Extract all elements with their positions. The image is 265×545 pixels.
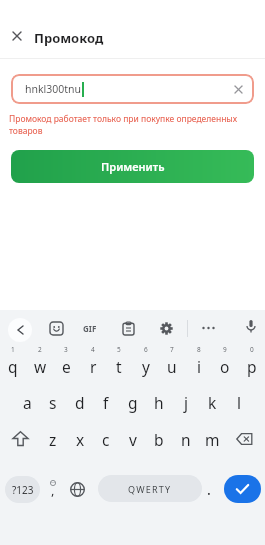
staticText: Применить (101, 159, 165, 174)
button[interactable] (66, 478, 88, 500)
button[interactable]: d (67, 389, 93, 415)
staticText: 6 (144, 345, 148, 354)
staticText: h (154, 392, 164, 413)
staticText: j (184, 392, 188, 413)
staticText: QWERTY (128, 483, 172, 495)
staticText: a (23, 392, 32, 413)
button[interactable]: g (120, 389, 146, 415)
button[interactable] (198, 319, 218, 337)
button[interactable]: , (43, 477, 63, 501)
button[interactable] (8, 318, 32, 342)
staticText: 8 (197, 345, 201, 354)
staticText: l (237, 392, 241, 413)
button[interactable]: l (226, 389, 252, 415)
button[interactable]: QWERTY (98, 475, 202, 502)
staticText: Промокод работает только при покупке опр… (9, 113, 238, 137)
staticText: o (220, 356, 230, 377)
staticText: q (8, 356, 18, 377)
staticText: w (34, 356, 47, 377)
button[interactable]: q (0, 353, 26, 379)
staticText: i (197, 356, 201, 377)
button[interactable] (156, 318, 176, 338)
staticText: b (154, 429, 164, 450)
button[interactable] (118, 318, 138, 338)
staticText: y (142, 356, 150, 377)
button[interactable]: . (201, 477, 217, 501)
staticText: d (75, 392, 85, 413)
staticText: z (49, 429, 57, 450)
staticText: hnkl300tnu (25, 82, 82, 96)
button[interactable]: Применить (11, 150, 254, 183)
staticText: g (128, 392, 138, 413)
button[interactable]: u (159, 353, 185, 379)
button[interactable] (241, 317, 261, 337)
staticText: 3 (64, 345, 68, 354)
staticText: k (208, 392, 217, 413)
staticText: Промокод (34, 29, 104, 47)
button[interactable]: a (14, 389, 40, 415)
button[interactable] (8, 427, 32, 451)
staticText: n (181, 429, 191, 450)
staticText: p (247, 356, 257, 377)
button[interactable]: k (199, 389, 225, 415)
button[interactable]: m (199, 426, 225, 452)
button[interactable]: GIF (78, 319, 102, 337)
button[interactable]: e (53, 353, 79, 379)
staticText: 1 (11, 345, 15, 354)
button[interactable]: o (212, 353, 238, 379)
staticText: c (102, 429, 110, 450)
staticText: 4 (91, 345, 95, 354)
button[interactable]: f (93, 389, 119, 415)
staticText: x (76, 429, 85, 450)
button[interactable]: w (27, 353, 53, 379)
button[interactable]: y (133, 353, 159, 379)
button[interactable] (232, 427, 256, 451)
button[interactable]: p (239, 353, 265, 379)
staticText: 9 (223, 345, 227, 354)
button[interactable]: t (106, 353, 132, 379)
staticText: s (49, 392, 57, 413)
staticText: u (167, 356, 177, 377)
staticText: r (90, 356, 97, 377)
staticText: f (103, 392, 109, 413)
staticText: 0 (250, 345, 254, 354)
staticText: 5 (117, 345, 121, 354)
staticText: GIF (83, 323, 97, 334)
button[interactable]: i (186, 353, 212, 379)
button[interactable]: h (146, 389, 172, 415)
button[interactable] (224, 475, 261, 503)
button[interactable]: z (40, 426, 66, 452)
button[interactable]: c (93, 426, 119, 452)
button[interactable]: ?123 (5, 476, 40, 503)
staticText: 2 (38, 345, 42, 354)
button[interactable] (46, 318, 66, 338)
button[interactable]: r (80, 353, 106, 379)
button[interactable]: x (67, 426, 93, 452)
staticText: , (51, 481, 55, 499)
staticText: . (207, 480, 211, 499)
button[interactable]: s (40, 389, 66, 415)
button[interactable]: b (146, 426, 172, 452)
staticText: v (129, 429, 137, 450)
staticText: m (205, 429, 220, 450)
button[interactable] (8, 27, 26, 45)
button[interactable]: n (173, 426, 199, 452)
staticText: t (116, 356, 122, 377)
button[interactable]: j (173, 389, 199, 415)
button[interactable]: v (120, 426, 146, 452)
staticText: ?123 (12, 483, 34, 497)
button[interactable]: hnkl300tnu (11, 74, 254, 104)
staticText: e (62, 356, 71, 377)
staticText: 7 (170, 345, 174, 354)
